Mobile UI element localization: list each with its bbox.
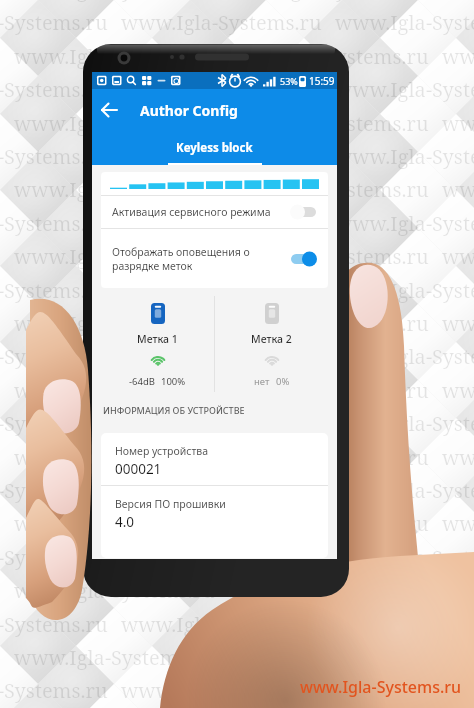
staticText: www.Igla-Systems.ru [0,143,167,170]
staticText: Активация сервисного режима [112,205,290,219]
button[interactable]: Версия ПО прошивки [101,486,328,558]
staticText: www.Igla-Systems.ru [14,110,274,137]
staticText: www.Igla-Systems.ru [228,43,474,70]
staticText: www.Igla-Systems.ru [228,444,474,471]
staticText: www.Igla-Systems.ru [442,444,474,471]
staticText: www.Igla-Systems.ru [335,143,474,170]
staticText: www.Igla-Systems.ru [335,677,474,704]
staticText: Версия ПО прошивки [115,497,226,511]
staticText: www.Igla-Systems.ru [335,210,474,237]
staticText: www.Igla-Systems.ru [0,477,167,504]
staticText: 4.0 [115,513,135,531]
staticText: www.Igla-Systems.ru [335,9,474,36]
staticText: 15:59 [309,74,335,88]
staticText: www.Igla-Systems.ru [228,110,474,137]
staticText: -64dB [129,375,155,388]
staticText: www.Igla-Systems.ru [121,477,381,504]
staticText: www.Igla-Systems.ru [0,277,167,304]
staticText: Метка 2 [251,332,292,346]
staticText: www.Igla-Systems.ru [300,676,462,698]
staticText: www.Igla-Systems.ru [228,510,474,537]
staticText: www.Igla-Systems.ru [228,377,474,404]
staticText: www.Igla-Systems.ru [14,43,274,70]
staticText: Отображать оповещения о разрядке меток [112,245,290,273]
staticText: www.Igla-Systems.ru [228,577,474,604]
staticText: Метка 1 [137,332,178,346]
staticText: www.Igla-Systems.ru [442,377,474,404]
staticText: 000021 [115,460,162,478]
button[interactable]: Back [96,97,122,123]
staticText: Номер устройства [115,444,209,458]
staticText: www.Igla-Systems.ru [228,243,474,270]
staticText: www.Igla-Systems.ru [335,544,474,571]
staticText: www.Igla-Systems.ru [0,343,167,370]
staticText: www.Igla-Systems.ru [228,644,474,671]
staticText: www.Igla-Systems.ru [0,677,167,704]
staticText: www.Igla-Systems.ru [14,377,274,404]
staticText: www.Igla-Systems.ru [121,410,381,437]
staticText: www.Igla-Systems.ru [0,611,167,638]
staticText: 100% [161,375,186,388]
staticText: www.Igla-Systems.ru [14,243,274,270]
staticText: www.Igla-Systems.ru [14,644,274,671]
staticText: www.Igla-Systems.ru [121,9,381,36]
staticText: www.Igla-Systems.ru [14,310,274,337]
staticText: www.Igla-Systems.ru [0,76,167,103]
staticText: www.Igla-Systems.ru [14,444,274,471]
staticText: www.Igla-Systems.ru [335,277,474,304]
staticText: www.Igla-Systems.ru [335,343,474,370]
staticText: www.Igla-Systems.ru [0,210,167,237]
staticText: www.Igla-Systems.ru [0,410,167,437]
button[interactable]: Keyless block [176,131,253,165]
staticText: www.Igla-Systems.ru [335,410,474,437]
staticText: Keyless block [176,140,253,156]
staticText: www.Igla-Systems.ru [121,544,381,571]
staticText: www.Igla-Systems.ru [14,176,274,203]
button[interactable]: Номер устройства [101,433,328,485]
button[interactable]: Метка 1 [101,293,214,395]
staticText: www.Igla-Systems.ru [442,310,474,337]
staticText: www.Igla-Systems.ru [121,76,381,103]
staticText: www.Igla-Systems.ru [442,43,474,70]
button[interactable]: Активация сервисного режима [101,196,328,228]
staticText: www.Igla-Systems.ru [228,310,474,337]
staticText: www.Igla-Systems.ru [14,577,274,604]
staticText: www.Igla-Systems.ru [121,210,381,237]
staticText: www.Igla-Systems.ru [335,76,474,103]
staticText: www.Igla-Systems.ru [121,143,381,170]
staticText: нет [254,375,270,388]
staticText: www.Igla-Systems.ru [121,677,381,704]
staticText: www.Igla-Systems.ru [228,176,474,203]
staticText: www.Igla-Systems.ru [335,611,474,638]
button[interactable]: Отображать оповещения о разрядке меток [101,229,328,288]
staticText: www.Igla-Systems.ru [442,176,474,203]
staticText: www.Igla-Systems.ru [335,477,474,504]
staticText: www.Igla-Systems.ru [442,510,474,537]
staticText: www.Igla-Systems.ru [228,0,474,3]
staticText: www.Igla-Systems.ru [14,0,274,3]
staticText: www.Igla-Systems.ru [121,611,381,638]
staticText: ИНФОРМАЦИЯ ОБ УСТРОЙСТВЕ [103,404,245,416]
staticText: Author Config [140,101,238,120]
staticText: 0% [276,375,290,388]
staticText: www.Igla-Systems.ru [0,544,167,571]
staticText: www.Igla-Systems.ru [0,9,167,36]
staticText: www.Igla-Systems.ru [442,243,474,270]
staticText: www.Igla-Systems.ru [121,343,381,370]
staticText: www.Igla-Systems.ru [442,110,474,137]
staticText: www.Igla-Systems.ru [14,510,274,537]
staticText: 53% [280,75,298,87]
button[interactable]: Метка 2 [215,293,328,395]
staticText: www.Igla-Systems.ru [121,277,381,304]
